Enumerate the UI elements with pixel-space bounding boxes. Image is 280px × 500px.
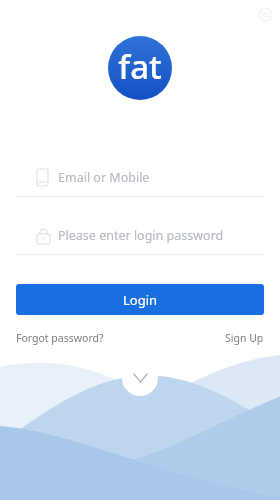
button[interactable]: Email or Mobile bbox=[16, 158, 264, 196]
button[interactable]: Please enter login password bbox=[16, 216, 264, 254]
button[interactable]: Forgot password? bbox=[16, 331, 104, 345]
staticText: Email or Mobile bbox=[58, 169, 150, 186]
staticText: fat bbox=[118, 44, 162, 89]
staticText: Please enter login password bbox=[58, 227, 224, 244]
staticText: Login bbox=[123, 291, 158, 309]
staticText: Sign Up bbox=[225, 331, 264, 345]
button[interactable]: Login bbox=[16, 284, 264, 315]
staticText: Forgot password? bbox=[16, 331, 104, 345]
button[interactable]: Sign Up bbox=[225, 331, 264, 345]
button[interactable]: Info bbox=[256, 5, 274, 23]
button[interactable]: Expand bbox=[122, 360, 158, 396]
